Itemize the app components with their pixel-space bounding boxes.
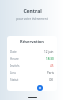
button[interactable]: Statut [10, 76, 54, 83]
button[interactable]: Invités [10, 62, 54, 69]
staticText: 45 [50, 64, 54, 68]
staticText: Central [23, 8, 42, 15]
staticText: 12 juin [44, 50, 54, 54]
staticText: Réservation [10, 39, 54, 44]
staticText: Invités [10, 64, 20, 68]
staticText: pour votre évènement [16, 17, 48, 21]
staticText: Heure [10, 57, 19, 61]
staticText: Date [10, 50, 17, 54]
button[interactable]: Lieu [10, 69, 54, 76]
staticText: Paris [47, 71, 54, 75]
staticText: Lieu [10, 71, 16, 75]
button[interactable]: Date [10, 48, 54, 55]
button[interactable]: Heure [10, 55, 54, 62]
button[interactable]: Add [37, 85, 43, 91]
staticText: 18:30 [46, 57, 54, 61]
staticText: OK [49, 78, 54, 82]
staticText: Statut [10, 78, 19, 82]
